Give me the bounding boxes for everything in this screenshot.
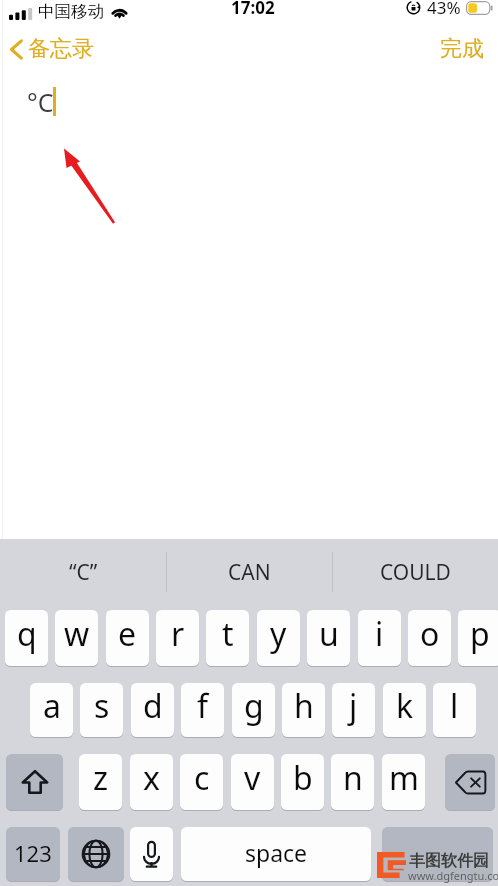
staticText: a [43,684,61,728]
button[interactable]: space [181,827,371,881]
button[interactable]: Switch keyboard [68,827,124,881]
button[interactable]: d [131,683,174,737]
staticText: 完成 [440,35,484,63]
staticText: m [389,756,419,800]
staticText: °C [27,85,54,119]
button[interactable]: n [331,754,374,810]
button[interactable]: 备忘录 [9,35,94,63]
button[interactable]: a [30,683,73,737]
staticText: y [270,612,287,656]
button[interactable]: COULD [333,539,498,605]
staticText: 丰图软件园 [409,851,489,871]
staticText: CAN [228,558,271,587]
button[interactable]: e [106,610,149,666]
staticText: l [450,684,459,728]
button[interactable]: o [408,610,451,666]
staticText: g [244,684,264,728]
button[interactable]: w [55,610,98,666]
staticText: 17:02 [231,0,275,19]
button[interactable]: c [180,754,223,810]
staticText: p [470,612,490,656]
button[interactable]: t [206,610,249,666]
staticText: 123 [14,838,52,868]
button[interactable]: 完成 [440,35,484,63]
button[interactable]: b [281,754,324,810]
button[interactable]: i [358,610,401,666]
staticText: b [293,756,313,800]
staticText: 备忘录 [28,35,94,63]
staticText: u [319,612,339,656]
button[interactable]: Dictate [130,827,173,881]
button[interactable]: CAN [167,539,332,605]
staticText: h [294,684,314,728]
button[interactable]: Return [382,827,493,881]
staticText: x [143,756,160,800]
button[interactable]: p [458,610,498,666]
staticText: w [64,612,90,656]
staticText: n [343,756,363,800]
staticText: z [93,756,109,800]
staticText: www.dgfengtu.com [408,868,498,883]
staticText: “C” [69,558,98,587]
button[interactable]: q [5,610,48,666]
staticText: t [222,612,234,656]
staticText: space [245,837,308,868]
staticText: s [94,684,110,728]
button[interactable]: y [257,610,300,666]
button[interactable]: x [130,754,173,810]
button[interactable]: r [156,610,199,666]
staticText: r [171,612,185,656]
staticText: j [349,684,358,728]
button[interactable]: z [79,754,122,810]
staticText: c [194,756,210,800]
staticText: k [396,684,414,728]
button[interactable]: v [231,754,274,810]
staticText: o [420,612,440,656]
button[interactable]: m [382,754,425,810]
button[interactable]: h [282,683,325,737]
button[interactable]: s [80,683,123,737]
button[interactable]: u [307,610,350,666]
button[interactable]: k [383,683,426,737]
staticText: i [375,612,384,656]
staticText: e [118,612,137,656]
staticText: d [143,684,163,728]
button[interactable]: j [332,683,375,737]
staticText: v [244,756,261,800]
staticText: f [197,684,209,728]
button[interactable]: Backspace [445,754,495,810]
button[interactable]: l [433,683,476,737]
button[interactable]: g [232,683,275,737]
staticText: q [17,612,37,656]
staticText: 中国移动 [38,1,104,22]
button[interactable]: 123 [6,827,60,881]
button[interactable]: f [181,683,224,737]
button[interactable]: Shift [6,754,63,810]
button[interactable]: “C” [0,539,166,605]
staticText: COULD [380,558,451,587]
staticText: 43% [427,0,461,19]
